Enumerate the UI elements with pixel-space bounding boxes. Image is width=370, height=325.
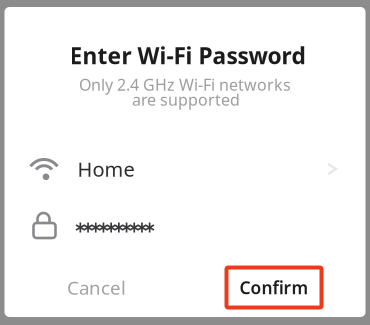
- button[interactable]: Cancel: [48, 267, 144, 307]
- button[interactable]: Password: [4, 200, 365, 254]
- staticText: Home: [77, 156, 134, 182]
- button[interactable]: Home: [4, 142, 365, 196]
- staticText: Cancel: [67, 275, 126, 300]
- staticText: Enter Wi-Fi Password: [69, 40, 305, 70]
- staticText: Confirm: [239, 276, 308, 299]
- staticText: Only 2.4 GHz Wi-Fi networks: [79, 74, 291, 95]
- button[interactable]: Confirm: [228, 269, 320, 305]
- staticText: are supported: [132, 89, 240, 110]
